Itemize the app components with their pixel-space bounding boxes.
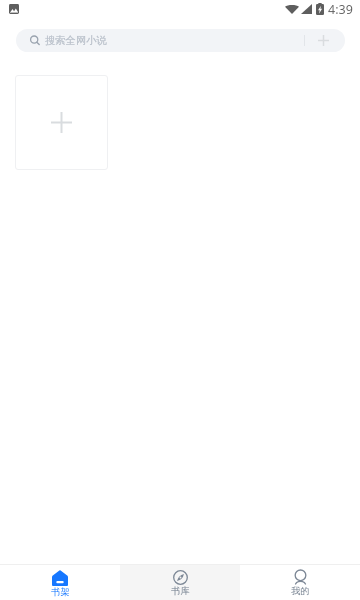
staticText: 搜索全网小说 bbox=[45, 34, 107, 47]
button[interactable]: 我的 bbox=[240, 565, 360, 600]
staticText: 我的 bbox=[291, 585, 310, 597]
button[interactable]: 书库 bbox=[120, 565, 240, 600]
button[interactable]: Add book bbox=[15, 75, 108, 170]
button[interactable]: 搜索全网小说 bbox=[16, 29, 345, 52]
staticText: 4:39 bbox=[328, 1, 353, 16]
staticText: 书架 bbox=[51, 586, 70, 598]
button[interactable]: 书架 bbox=[0, 565, 120, 600]
button[interactable]: Add bbox=[305, 29, 341, 52]
staticText: 书库 bbox=[171, 585, 190, 597]
